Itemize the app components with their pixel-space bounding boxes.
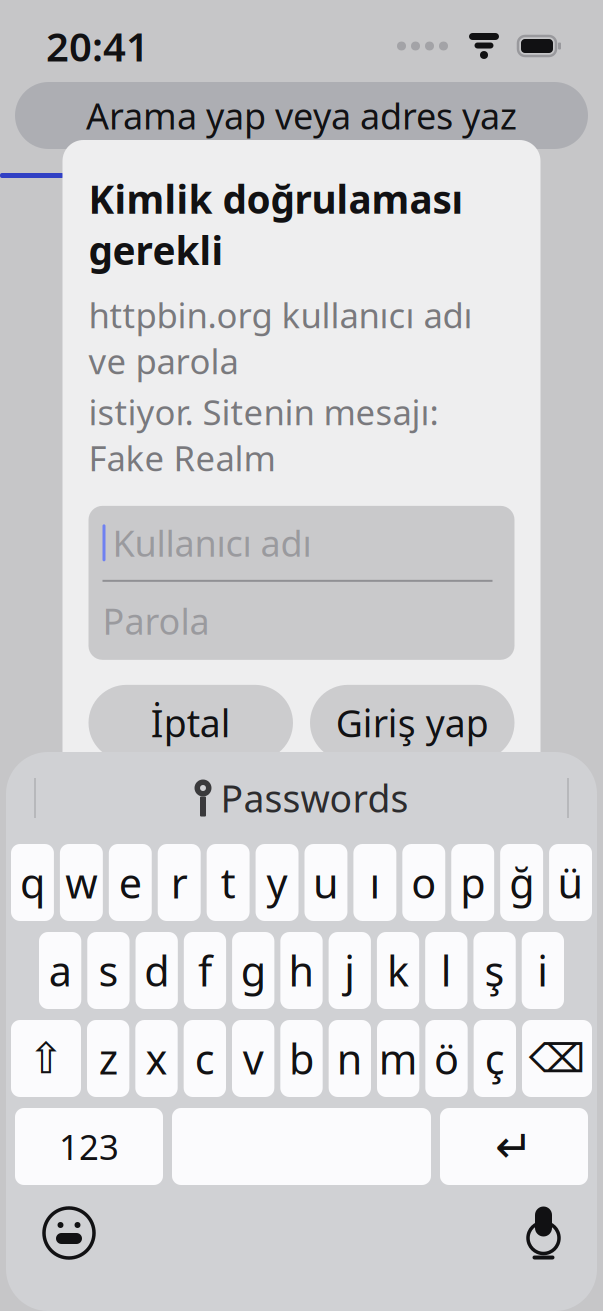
staticText: İptal <box>151 698 231 748</box>
button[interactable]: Return <box>440 1108 588 1185</box>
staticText: G <box>123 338 141 372</box>
button[interactable]: Giriş yap <box>310 685 514 761</box>
button[interactable]: Delete <box>522 1020 592 1097</box>
staticText: Parola <box>102 597 209 645</box>
button[interactable]: i <box>522 932 564 1009</box>
button[interactable]: l <box>425 932 467 1009</box>
button[interactable]: Passwords <box>194 773 408 823</box>
staticText: ↵ <box>495 1121 533 1172</box>
staticText: b <box>289 1031 314 1086</box>
staticText: ⌫ <box>528 1036 585 1081</box>
staticText: j <box>344 943 355 998</box>
staticText: m <box>379 1031 418 1086</box>
staticText: Giriş yap <box>336 698 489 748</box>
button[interactable]: j <box>329 932 371 1009</box>
button[interactable]: Shift <box>11 1020 81 1097</box>
staticText: z <box>99 1031 118 1086</box>
staticText: p <box>460 855 485 910</box>
button[interactable]: n <box>329 1020 371 1097</box>
button[interactable]: b <box>280 1020 323 1097</box>
button[interactable]: ö <box>425 1020 468 1097</box>
button[interactable]: ş <box>473 932 516 1009</box>
button[interactable]: t <box>207 844 250 921</box>
button[interactable]: w <box>60 844 103 921</box>
button[interactable]: e <box>109 844 152 921</box>
button[interactable]: Arama yap veya adres yaz <box>15 82 588 149</box>
staticText: Passwords <box>220 773 408 823</box>
button[interactable]: p <box>451 844 494 921</box>
staticText: d <box>144 943 169 998</box>
staticText: i <box>537 943 548 998</box>
staticText: w <box>65 855 97 910</box>
staticText: ü <box>557 855 583 910</box>
button[interactable]: Dictation <box>528 1206 559 1259</box>
button[interactable]: ğ <box>500 844 543 921</box>
staticText: ı <box>369 855 380 910</box>
staticText: u <box>313 855 339 910</box>
staticText: ğ <box>509 855 534 910</box>
button[interactable]: h <box>280 932 323 1009</box>
staticText: ş <box>485 943 505 998</box>
button[interactable]: İptal <box>88 685 293 761</box>
staticText: t <box>221 855 236 910</box>
staticText: n <box>337 1031 363 1086</box>
staticText: c <box>195 1031 215 1086</box>
staticText: l <box>441 943 452 998</box>
staticText: r <box>171 855 188 910</box>
staticText: ö <box>434 1031 459 1086</box>
staticText: 123 <box>59 1123 119 1169</box>
button[interactable]: v <box>232 1020 274 1097</box>
button[interactable]: y <box>256 844 298 921</box>
staticText: s <box>98 943 118 998</box>
staticText: o <box>411 855 436 910</box>
button[interactable]: 123 <box>15 1108 163 1185</box>
staticText: istiyor. Sitenin mesajı: Fake Realm <box>88 389 438 481</box>
button[interactable]: o <box>402 844 445 921</box>
button[interactable]: f <box>184 932 226 1009</box>
button[interactable]: ç <box>474 1020 516 1097</box>
staticText: h <box>288 943 314 998</box>
button[interactable]: s <box>87 932 130 1009</box>
staticText: k <box>387 943 409 998</box>
button[interactable]: ü <box>549 844 592 921</box>
staticText: v <box>243 1031 264 1086</box>
staticText: ⇧ <box>28 1034 64 1083</box>
staticText: Kullanıcı adı <box>112 519 311 567</box>
staticText: q <box>20 855 45 910</box>
staticText: Arama yap veya adres yaz <box>86 92 517 139</box>
button[interactable]: g <box>232 932 274 1009</box>
staticText: Kimlik doğrulaması gerekli <box>88 173 463 276</box>
button[interactable]: x <box>135 1020 178 1097</box>
button[interactable]: q <box>11 844 54 921</box>
button[interactable]: u <box>304 844 347 921</box>
button[interactable]: Emoji <box>44 1208 94 1258</box>
button[interactable]: a <box>39 932 81 1009</box>
button[interactable]: c <box>184 1020 226 1097</box>
staticText: httpbin.org kullanıcı adı ve parola <box>88 292 472 384</box>
staticText: x <box>145 1031 167 1086</box>
button[interactable]: m <box>377 1020 419 1097</box>
staticText: 20:41 <box>46 19 149 72</box>
staticText: Vik. <box>111 498 154 531</box>
button[interactable]: ı <box>353 844 396 921</box>
button[interactable]: r <box>158 844 201 921</box>
staticText: y <box>266 855 287 910</box>
button[interactable]: k <box>377 932 419 1009</box>
staticText: ç <box>485 1031 505 1086</box>
staticText: e <box>119 855 142 910</box>
button[interactable]: d <box>135 932 178 1009</box>
button[interactable]: z <box>87 1020 129 1097</box>
staticText: a <box>49 943 72 998</box>
staticText: g <box>241 943 266 998</box>
staticText: f <box>198 943 212 998</box>
